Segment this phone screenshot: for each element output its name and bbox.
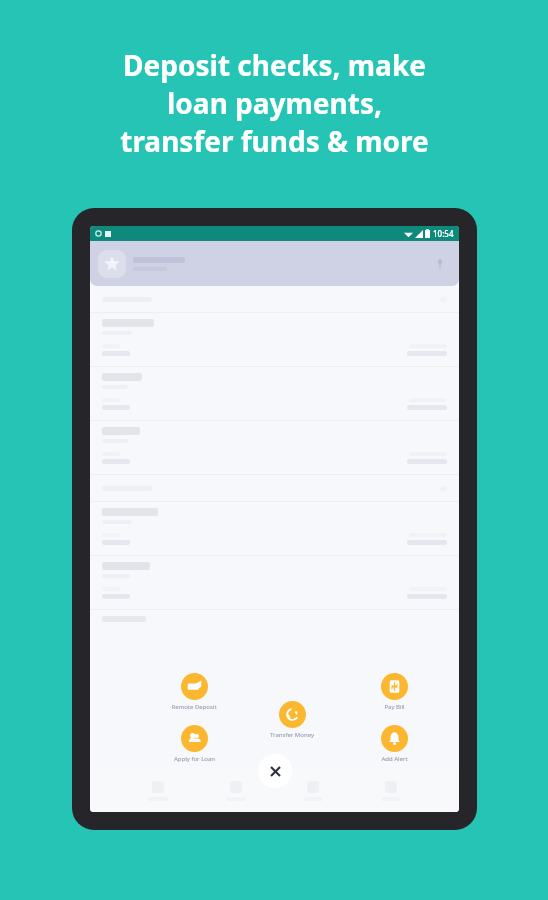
button[interactable]: Close menu (258, 754, 292, 788)
staticText: transfer funds & more (120, 122, 429, 160)
staticText: 10:54 (433, 228, 454, 239)
button[interactable]: Voice search (90, 241, 459, 286)
button[interactable]: Voice search (431, 255, 449, 273)
staticText: Pay Bill (384, 703, 405, 711)
staticText: Add Alert (381, 755, 408, 763)
button[interactable]: Apply for Loan (152, 725, 236, 763)
staticText: Deposit checks, make (123, 46, 426, 84)
button[interactable]: Pay Bill (352, 673, 436, 711)
staticText: loan payments, (167, 84, 382, 122)
staticText: Apply for Loan (174, 755, 215, 763)
button[interactable]: Transfer Money (250, 701, 334, 739)
staticText: Transfer Money (270, 731, 314, 739)
button[interactable]: Remote Deposit (152, 673, 236, 711)
button[interactable]: Add Alert (352, 725, 436, 763)
staticText: Remote Deposit (171, 703, 217, 711)
